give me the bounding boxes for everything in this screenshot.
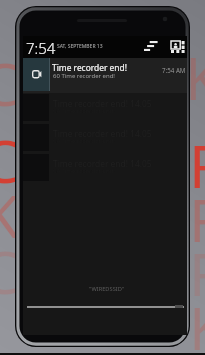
staticText: 60 Time recorder end! xyxy=(53,72,115,80)
staticText: 7:54 AM xyxy=(162,66,186,74)
staticText: R xyxy=(189,180,205,259)
button[interactable]: Time recorder end! 14.05 xyxy=(23,153,187,183)
button[interactable]: Quick settings xyxy=(168,36,188,58)
staticText: K xyxy=(185,38,205,117)
staticText: R xyxy=(189,126,205,205)
staticText: C xyxy=(0,121,19,200)
staticText: K xyxy=(189,288,205,355)
staticText: K xyxy=(0,176,19,255)
staticText: R xyxy=(189,234,205,313)
staticText: SAT, SEPTEMBER 13 xyxy=(57,43,103,50)
staticText: Time recorder end! xyxy=(52,62,127,73)
staticText: 7:54 xyxy=(26,38,56,58)
button[interactable]: Settings xyxy=(141,35,161,57)
button[interactable]: Time recorder end! xyxy=(23,58,187,93)
button[interactable]: Time recorder end! 14.05 xyxy=(23,123,187,153)
staticText: C xyxy=(0,44,19,123)
staticText: "WIREDSSID" xyxy=(89,285,125,293)
staticText: C xyxy=(0,232,19,311)
button[interactable]: Time recorder end! 14.05 xyxy=(23,93,187,123)
